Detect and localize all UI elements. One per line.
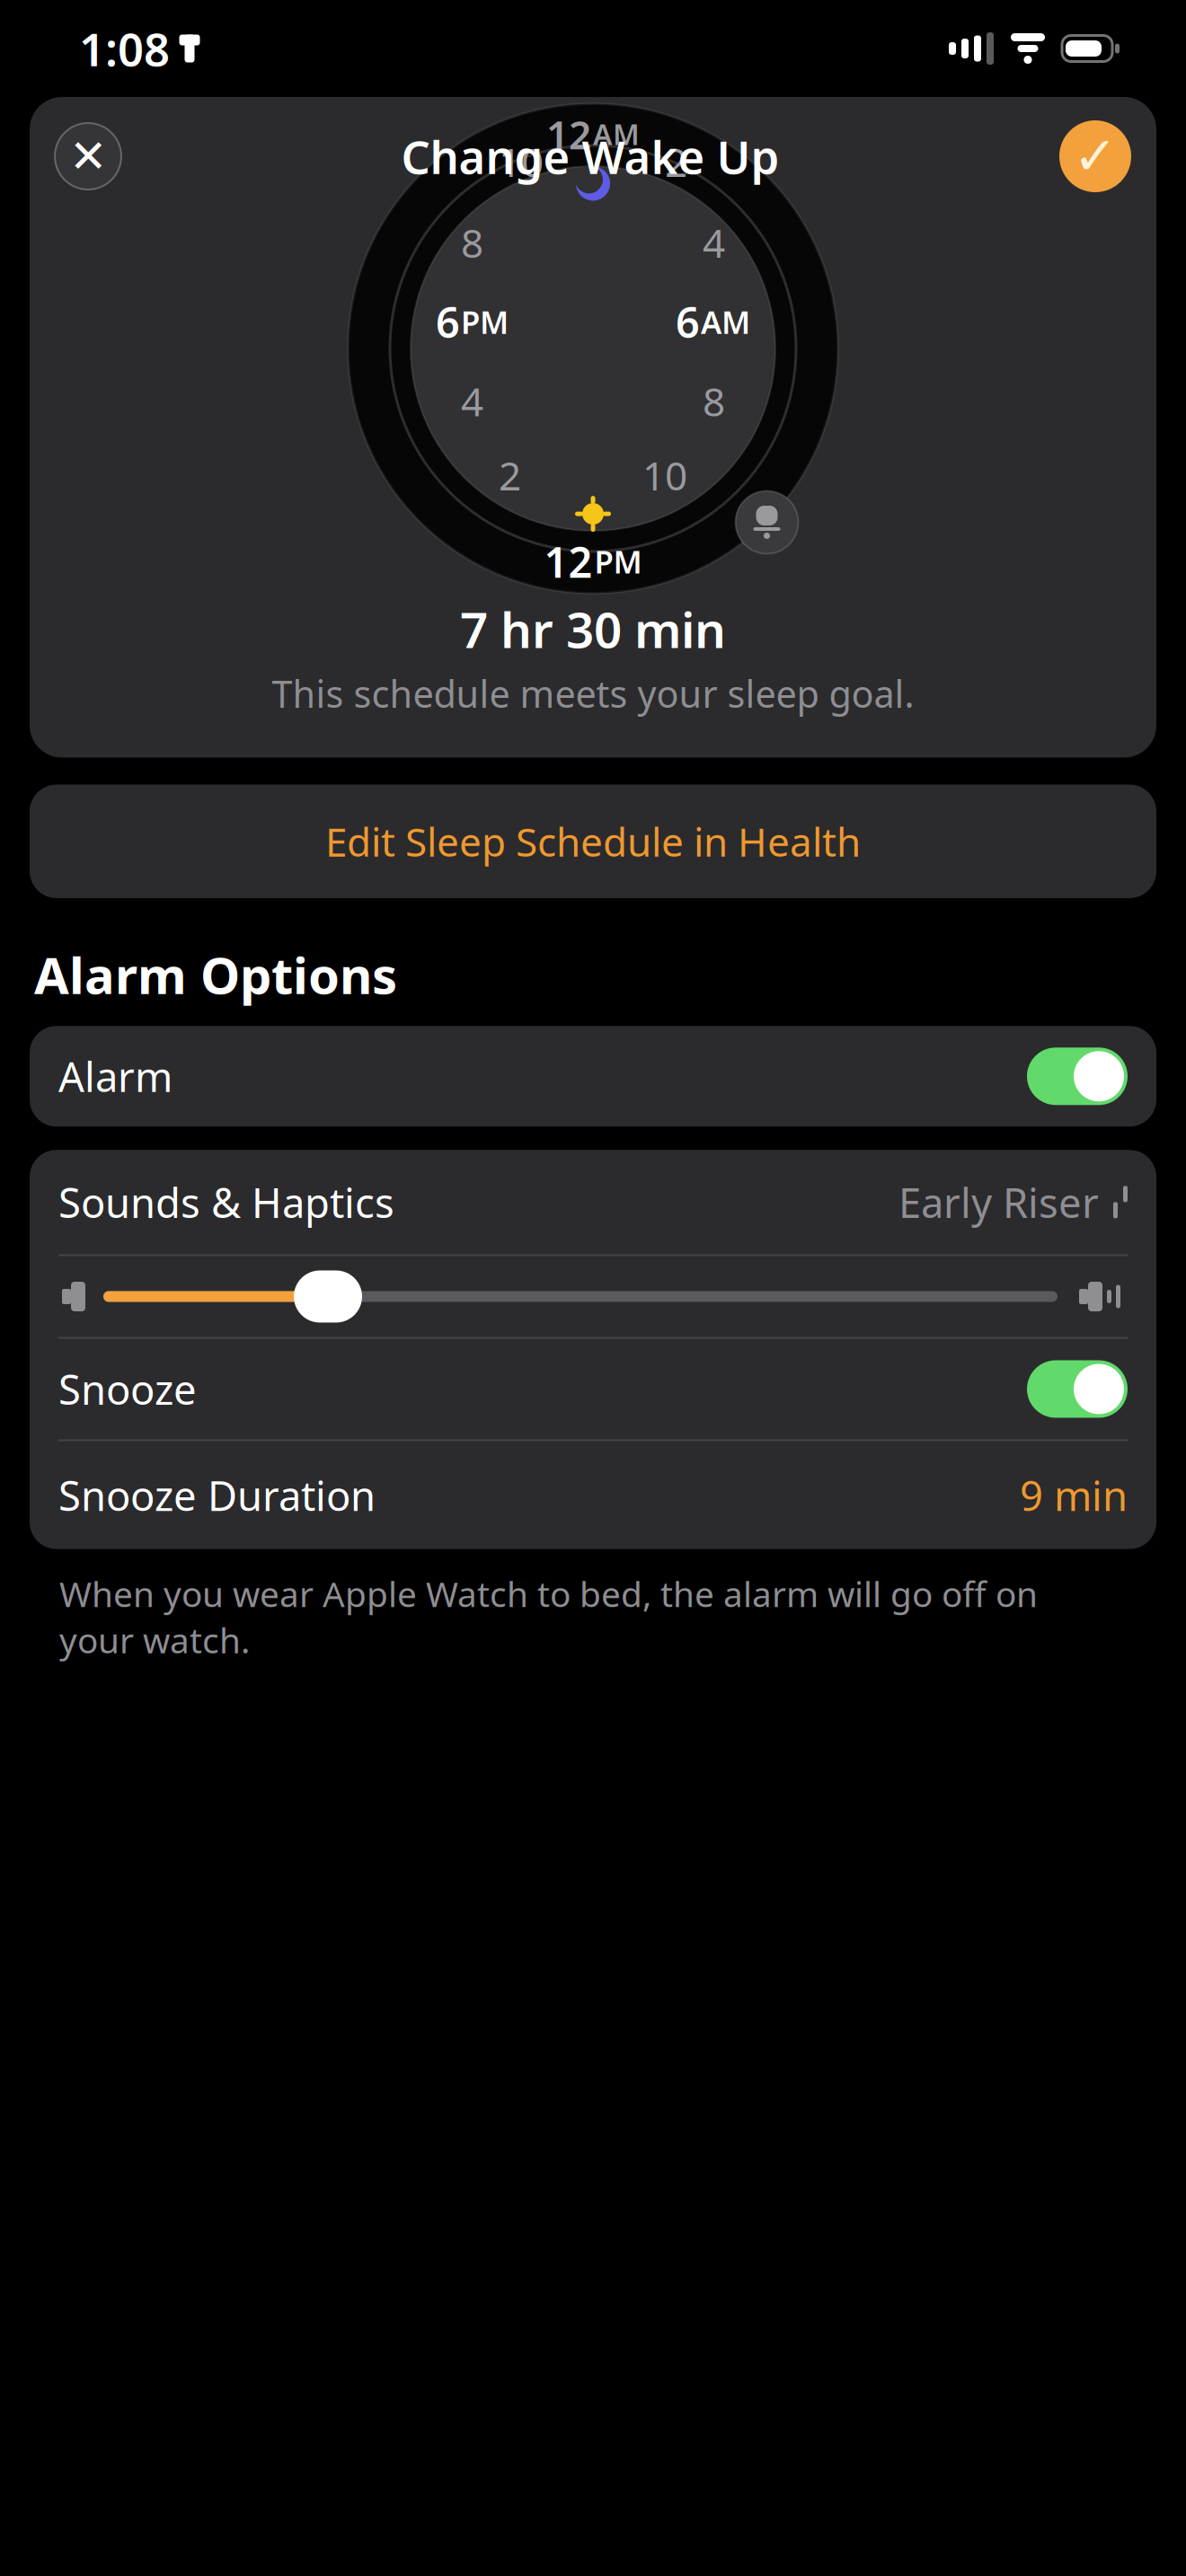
button[interactable]: Sounds & Haptics (30, 1150, 1156, 1254)
staticText: Alarm (58, 1049, 173, 1103)
staticText: 7 hr 30 min (460, 596, 726, 662)
staticText: This schedule meets your sleep goal. (272, 669, 914, 718)
staticText: Early Riser (898, 1175, 1099, 1229)
staticText: 4 (461, 375, 483, 427)
staticText: Sounds & Haptics (58, 1175, 394, 1229)
button[interactable]: Alarm (30, 1026, 1156, 1127)
staticText: AM (593, 115, 640, 153)
staticText: 10 (499, 135, 544, 188)
staticText: 8 (461, 216, 483, 269)
staticText: Edit Sleep Schedule in Health (325, 815, 861, 868)
button[interactable]: Snooze (30, 1339, 1156, 1439)
staticText: ✕ (69, 130, 107, 182)
staticText: Change Wake Up (401, 126, 779, 187)
staticText: 6 (436, 294, 460, 350)
staticText: AM (701, 301, 750, 342)
staticText: 1:08 (79, 18, 170, 79)
staticText: 12 (546, 108, 591, 160)
staticText: 2 (665, 135, 687, 188)
staticText: When you wear Apple Watch to bed, the al… (59, 1571, 1038, 1663)
button[interactable]: Edit Sleep Schedule in Health (30, 785, 1156, 898)
button[interactable]: Close (55, 123, 121, 190)
staticText: Alarm Options (34, 941, 397, 1008)
staticText: ✓ (1073, 126, 1117, 186)
button[interactable]: Snooze Duration (30, 1441, 1156, 1549)
staticText: Snooze Duration (58, 1468, 376, 1522)
staticText: 8 (703, 375, 725, 427)
staticText: 4 (703, 216, 725, 269)
staticText: Snooze (58, 1362, 197, 1416)
staticText: PM (461, 301, 509, 342)
staticText: 10 (642, 449, 687, 501)
staticText: 12 (544, 534, 593, 589)
staticText: PM (594, 541, 642, 582)
staticText: 6 (676, 294, 700, 350)
button[interactable]: Confirm (1059, 120, 1131, 192)
staticText: 9 min (1020, 1468, 1128, 1522)
staticText: 2 (499, 449, 521, 501)
